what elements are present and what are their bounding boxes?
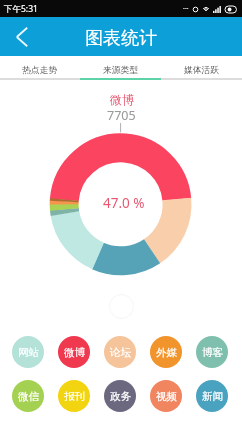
staticText: 来源类型 bbox=[103, 65, 139, 76]
button[interactable]: 外媒 bbox=[150, 336, 182, 368]
staticText: 视频 bbox=[156, 390, 177, 403]
button[interactable]: 博客 bbox=[196, 336, 228, 368]
button[interactable]: 新闻 bbox=[196, 380, 228, 412]
button[interactable]: 论坛 bbox=[104, 336, 136, 368]
staticText: 报刊 bbox=[64, 390, 85, 403]
staticText: 外媒 bbox=[156, 346, 177, 359]
staticText: ··· bbox=[183, 4, 189, 14]
button[interactable]: 政务 bbox=[104, 380, 136, 412]
staticText: 热点走势 bbox=[22, 65, 58, 76]
button[interactable]: 微博 bbox=[58, 336, 90, 368]
staticText: 新闻 bbox=[202, 390, 223, 403]
button[interactable]: 媒体活跃 bbox=[161, 56, 242, 80]
button[interactable]: 微信 bbox=[12, 380, 44, 412]
staticText: 网站 bbox=[18, 346, 39, 359]
staticText: 图表统计 bbox=[85, 27, 157, 50]
button[interactable]: 热点走势 bbox=[0, 56, 80, 80]
staticText: 媒体活跃 bbox=[184, 65, 220, 76]
button[interactable]: 报刊 bbox=[58, 380, 90, 412]
staticText: 7705 bbox=[107, 107, 136, 124]
staticText: 下午5:31 bbox=[4, 3, 38, 15]
staticText: 政务 bbox=[110, 390, 131, 403]
staticText: 微博 bbox=[64, 346, 85, 359]
button[interactable]: 视频 bbox=[150, 380, 182, 412]
staticText: 论坛 bbox=[110, 346, 131, 359]
button[interactable]: 网站 bbox=[12, 336, 44, 368]
staticText: 博客 bbox=[202, 346, 223, 359]
staticText: 47.0 % bbox=[103, 194, 145, 212]
staticText: 微博 bbox=[110, 92, 134, 107]
staticText: 微信 bbox=[18, 390, 39, 403]
button[interactable]: Back bbox=[9, 17, 35, 56]
button[interactable]: 来源类型 bbox=[80, 56, 161, 80]
